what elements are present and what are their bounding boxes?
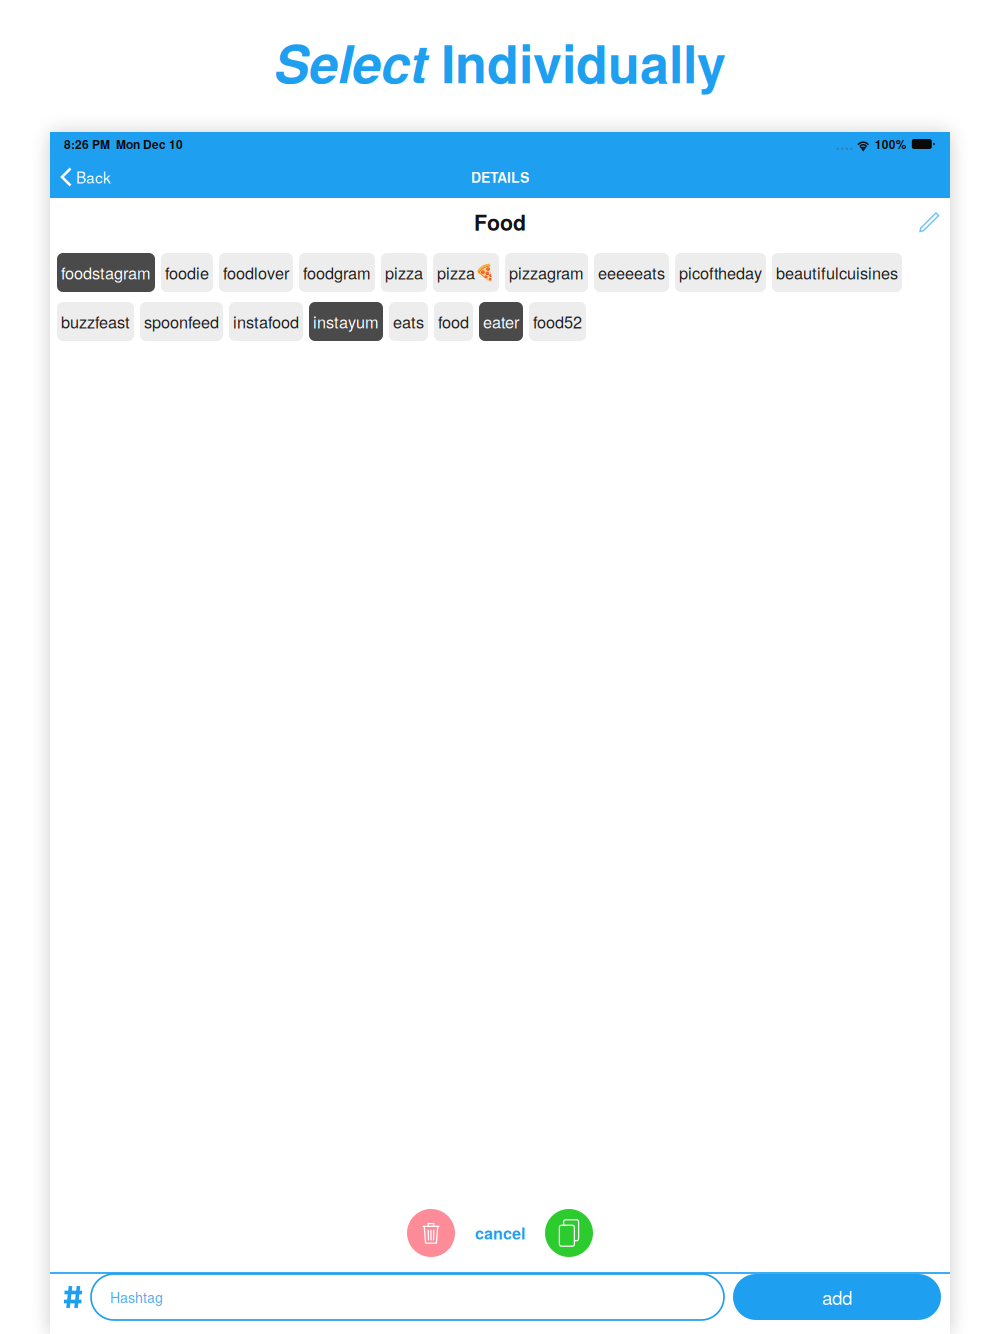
- button[interactable]: cancel: [475, 1221, 525, 1244]
- staticText: Mon Dec 10: [110, 135, 183, 153]
- button[interactable]: eeeeeats: [594, 253, 669, 292]
- button[interactable]: foodstagram: [57, 253, 155, 292]
- button[interactable]: pizza: [381, 253, 427, 292]
- staticText: eats: [393, 310, 424, 333]
- staticText: pizza: [437, 261, 475, 284]
- staticText: pizzagram: [509, 261, 584, 284]
- staticText: 🍕: [475, 263, 495, 282]
- button[interactable]: foodgram: [299, 253, 375, 292]
- button[interactable]: add: [733, 1274, 941, 1320]
- staticText: picoftheday: [679, 261, 762, 284]
- button[interactable]: pizzagram: [505, 253, 588, 292]
- staticText: cancel: [475, 1221, 525, 1244]
- button[interactable]: Hashtag: [91, 1274, 724, 1320]
- button[interactable]: beautifulcuisines: [772, 253, 902, 292]
- staticText: eater: [483, 310, 519, 333]
- button[interactable]: picoftheday: [675, 253, 766, 292]
- staticText: Food: [474, 207, 526, 237]
- button[interactable]: spoonfeed: [140, 302, 223, 341]
- button[interactable]: foodie: [161, 253, 213, 292]
- staticText: instafood: [233, 310, 299, 333]
- button[interactable]: eats: [389, 302, 428, 341]
- staticText: buzzfeast: [61, 310, 130, 333]
- staticText: DETAILS: [471, 167, 529, 187]
- button[interactable]: Copy: [545, 1209, 593, 1257]
- staticText: Hashtag: [110, 1287, 163, 1307]
- staticText: foodstagram: [61, 261, 151, 284]
- button[interactable]: buzzfeast: [57, 302, 134, 341]
- staticText: spoonfeed: [144, 310, 219, 333]
- staticText: eeeeeats: [598, 261, 665, 284]
- button[interactable]: instayum: [309, 302, 383, 341]
- staticText: foodgram: [303, 261, 371, 284]
- staticText: instayum: [313, 310, 379, 333]
- staticText: 100%: [875, 135, 907, 153]
- staticText: foodie: [165, 261, 209, 284]
- staticText: Select: [274, 25, 427, 99]
- button[interactable]: pizza: [433, 253, 499, 292]
- staticText: beautifulcuisines: [776, 261, 898, 284]
- button[interactable]: Edit: [911, 203, 948, 240]
- staticText: foodlover: [223, 261, 289, 284]
- staticText: 8:26 PM: [64, 135, 110, 153]
- staticText: add: [822, 1284, 852, 1310]
- staticText: Individually: [427, 25, 726, 99]
- button[interactable]: eater: [479, 302, 523, 341]
- staticText: pizza: [385, 261, 423, 284]
- staticText: food52: [533, 310, 582, 333]
- button[interactable]: food: [434, 302, 473, 341]
- staticText: Back: [76, 166, 111, 188]
- button[interactable]: Delete: [407, 1209, 455, 1257]
- button[interactable]: instafood: [229, 302, 303, 341]
- button[interactable]: food52: [529, 302, 586, 341]
- button[interactable]: foodlover: [219, 253, 293, 292]
- button[interactable]: Back: [50, 156, 125, 198]
- staticText: food: [438, 310, 469, 333]
